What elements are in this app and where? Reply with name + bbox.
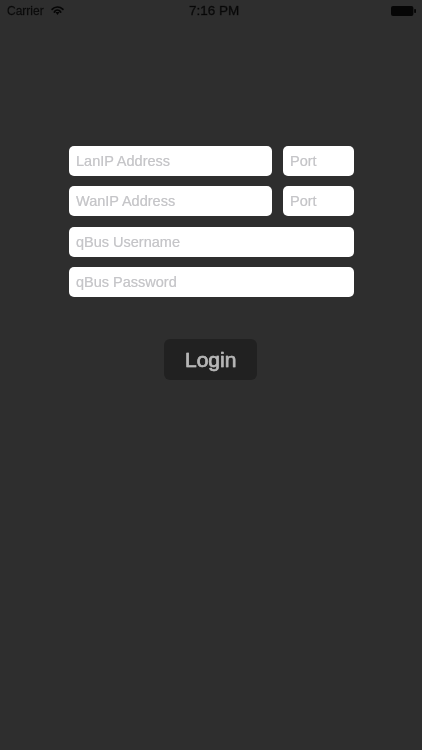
staticText: Login <box>185 348 237 371</box>
staticText: qBus Username <box>76 234 180 250</box>
staticText: 7:16 PM <box>189 3 240 18</box>
staticText: Port <box>290 193 317 209</box>
staticText: Carrier <box>7 4 44 17</box>
staticText: Port <box>290 153 317 169</box>
staticText: qBus Password <box>76 274 177 290</box>
button[interactable]: WanIP Address <box>69 186 272 216</box>
button[interactable]: qBus Username <box>69 227 354 257</box>
staticText: Login <box>185 348 237 371</box>
staticText: WanIP Address <box>76 193 176 209</box>
other: Battery full <box>391 6 416 16</box>
other: Wi-Fi signal <box>51 6 64 15</box>
button[interactable]: Port <box>283 146 354 176</box>
button[interactable]: qBus Password <box>69 267 354 297</box>
staticText: 7:16 PM <box>189 3 240 18</box>
staticText: LanIP Address <box>76 153 171 169</box>
staticText: Carrier <box>7 4 44 17</box>
button[interactable]: Port <box>283 186 354 216</box>
button[interactable]: Login <box>164 339 257 380</box>
button[interactable]: LanIP Address <box>69 146 272 176</box>
